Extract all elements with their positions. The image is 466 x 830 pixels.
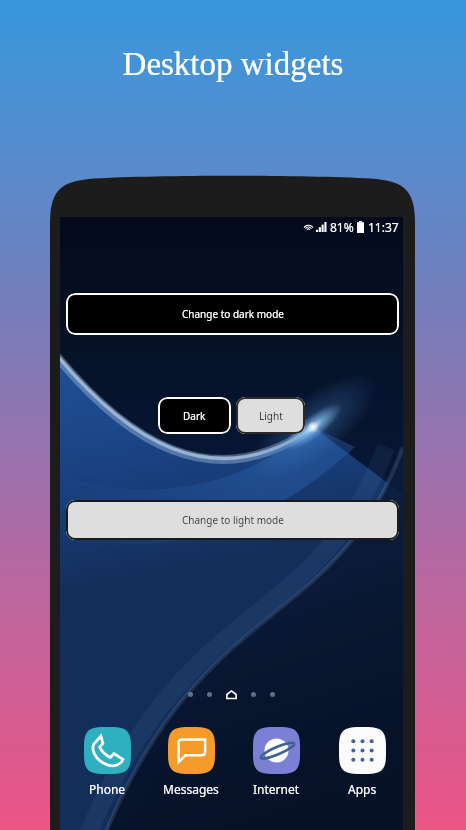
staticText: Phone	[89, 781, 126, 797]
button[interactable]: Internet	[243, 727, 309, 797]
button[interactable]: Dark	[158, 397, 231, 434]
staticText: 81%	[330, 219, 354, 235]
button[interactable]: Phone	[74, 727, 140, 797]
button[interactable]: Apps	[329, 727, 395, 797]
staticText: Change to dark mode	[182, 307, 284, 321]
button[interactable]: Change to light mode	[66, 500, 399, 540]
staticText: Internet	[253, 781, 300, 797]
staticText: 11:37	[368, 219, 399, 235]
staticText: Apps	[348, 781, 377, 797]
staticText: Change to light mode	[182, 513, 284, 527]
staticText: Messages	[163, 781, 219, 797]
staticText: Dark	[183, 409, 206, 423]
staticText: Light	[259, 409, 283, 423]
button[interactable]: Light	[236, 397, 305, 434]
staticText: Desktop widgets	[0, 46, 466, 83]
button[interactable]: Messages	[158, 727, 224, 797]
button[interactable]: Change to dark mode	[66, 293, 399, 335]
